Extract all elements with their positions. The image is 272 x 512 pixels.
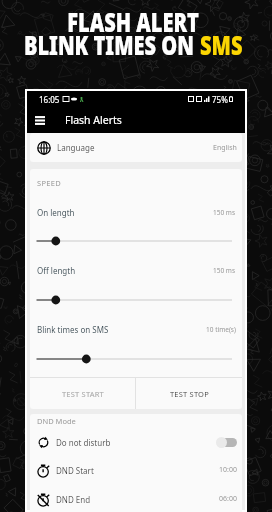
staticText: English xyxy=(213,143,237,153)
staticText: Language xyxy=(57,142,95,153)
button[interactable] xyxy=(30,293,242,307)
staticText: DND Mode xyxy=(37,416,76,426)
staticText: DND End xyxy=(56,494,91,505)
staticText: On length xyxy=(37,207,75,218)
staticText: 150 ms xyxy=(213,208,236,217)
staticText: 75% xyxy=(212,94,228,105)
staticText: DND Start xyxy=(56,465,94,476)
button[interactable]: DND End xyxy=(30,487,242,511)
button[interactable] xyxy=(30,234,242,248)
button[interactable]: Do not disturb toggle xyxy=(216,436,237,448)
button[interactable]: TEST STOP xyxy=(136,378,242,409)
staticText: FLASH ALERT xyxy=(53,4,213,40)
staticText: SPEED xyxy=(37,178,61,188)
button[interactable]: Do not disturb xyxy=(30,430,242,454)
staticText: 10 time(s) xyxy=(206,325,236,334)
staticText: 06:00 xyxy=(219,494,237,504)
staticText: Do not disturb xyxy=(56,437,111,448)
staticText: SMS xyxy=(200,27,243,63)
staticText: BLINK TIMES ON xyxy=(24,27,200,63)
button[interactable]: DND Start xyxy=(30,458,242,482)
staticText: Blink times on SMS xyxy=(37,324,109,335)
button[interactable]: Language xyxy=(30,133,242,162)
staticText: Off length xyxy=(37,265,76,276)
staticText: 150 ms xyxy=(213,266,236,275)
staticText: Flash Alerts xyxy=(65,113,122,127)
button[interactable] xyxy=(30,352,242,366)
staticText: 16:05 xyxy=(39,94,60,105)
staticText: TEST STOP xyxy=(170,389,209,399)
staticText: 10:00 xyxy=(219,465,237,475)
button[interactable]: TEST START xyxy=(30,378,135,409)
button[interactable]: Menu xyxy=(30,110,50,130)
staticText: TEST START xyxy=(62,389,104,399)
